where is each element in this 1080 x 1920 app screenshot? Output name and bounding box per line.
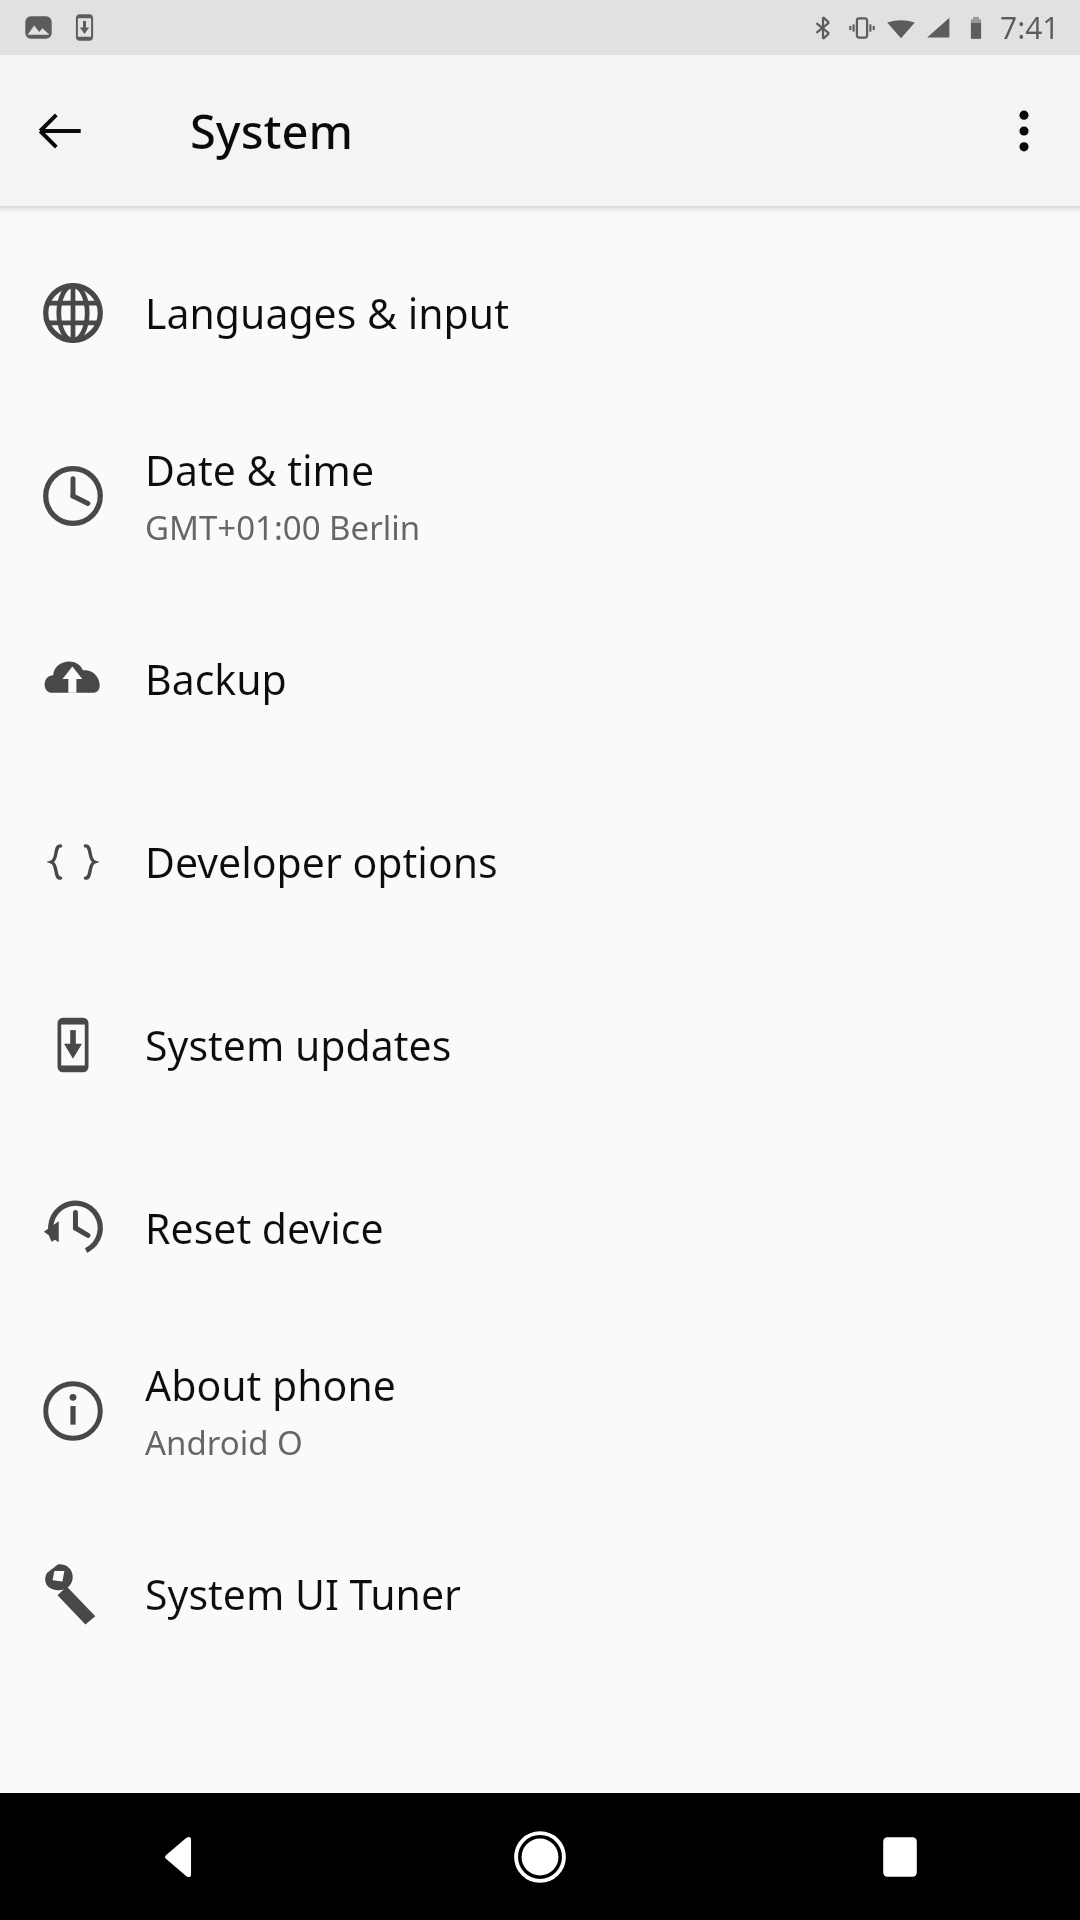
button[interactable]: Home — [360, 1793, 720, 1920]
staticText: Backup — [145, 651, 287, 707]
button[interactable]: Developer options — [0, 770, 1080, 953]
button[interactable]: Back — [0, 1793, 360, 1920]
button[interactable]: System updates — [0, 953, 1080, 1136]
button[interactable]: Back — [18, 89, 102, 173]
staticText: Date & time — [145, 442, 375, 498]
button[interactable]: Languages & input — [0, 221, 1080, 404]
button[interactable]: System UI Tuner — [0, 1502, 1080, 1685]
staticText: About phone — [145, 1357, 396, 1413]
staticText: 7:41 — [1000, 7, 1060, 48]
staticText: System — [190, 99, 353, 163]
button[interactable]: More options — [982, 89, 1066, 173]
button[interactable]: About phone — [0, 1319, 1080, 1502]
staticText: Developer options — [145, 834, 498, 890]
staticText: System updates — [145, 1017, 452, 1073]
button[interactable]: Recent apps — [720, 1793, 1080, 1920]
button[interactable]: Backup — [0, 587, 1080, 770]
staticText: Reset device — [145, 1200, 384, 1256]
button[interactable]: Reset device — [0, 1136, 1080, 1319]
staticText: Android O — [145, 1420, 303, 1465]
staticText: System UI Tuner — [145, 1566, 461, 1622]
staticText: Languages & input — [145, 285, 509, 341]
staticText: GMT+01:00 Berlin — [145, 505, 421, 550]
button[interactable]: Date & time — [0, 404, 1080, 587]
